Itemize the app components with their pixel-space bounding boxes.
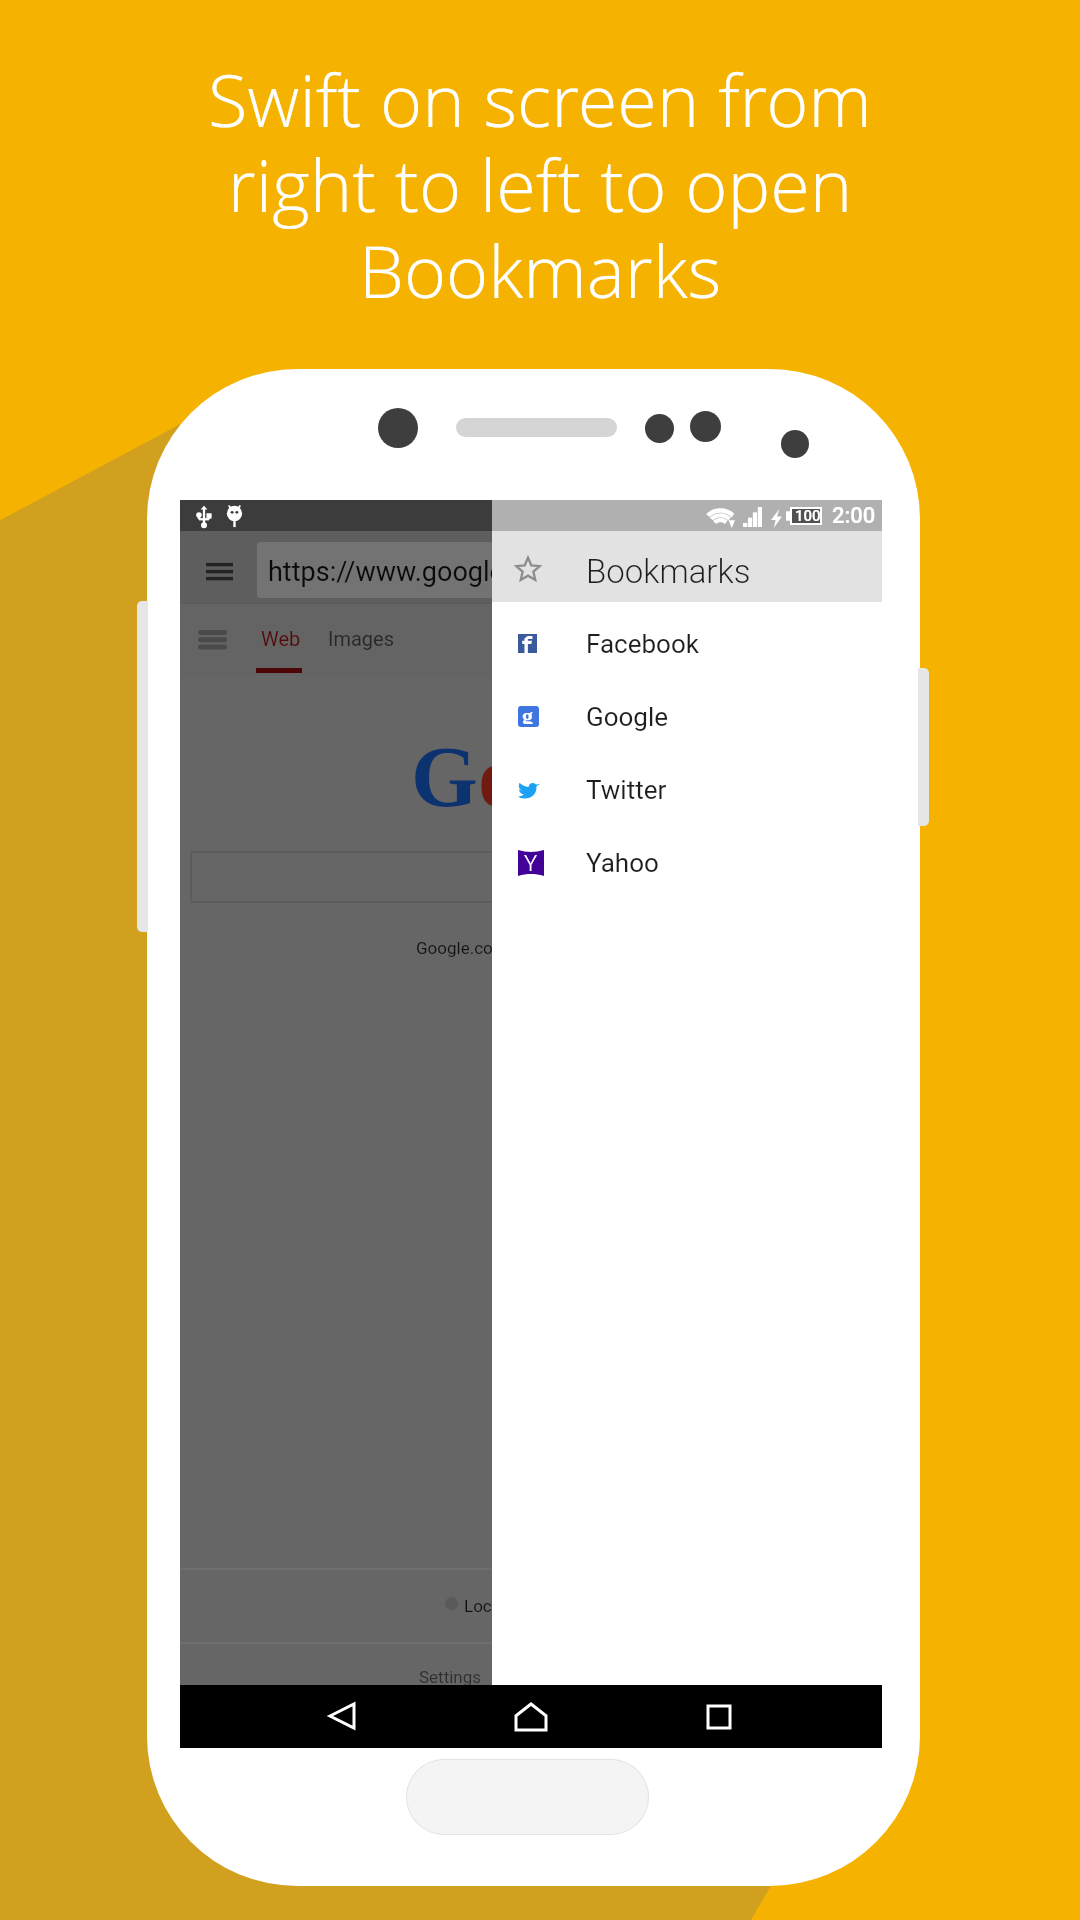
staticText: Settings <box>419 1667 482 1687</box>
staticText: Bookmarks <box>586 552 751 591</box>
button[interactable]: Recent apps <box>679 1685 759 1748</box>
staticText: Twitter <box>586 775 667 805</box>
staticText: g <box>564 729 607 824</box>
button[interactable]: Y <box>492 826 882 899</box>
button[interactable]: Home <box>491 1685 571 1748</box>
button[interactable]: Home <box>406 1759 649 1835</box>
staticText: 2:00 <box>832 503 876 529</box>
staticText: Location off <box>464 1596 556 1616</box>
staticText: Google.com <box>416 938 508 958</box>
staticText: l <box>607 729 631 824</box>
staticText: https://www.google.com <box>268 556 565 588</box>
staticText: o <box>478 729 521 824</box>
staticText: G <box>411 729 478 824</box>
staticText: Facebook <box>586 629 699 659</box>
staticText: Swift on screen from right to left to op… <box>0 50 1080 320</box>
staticText: Web <box>261 627 301 650</box>
button[interactable]: Back <box>302 1685 382 1748</box>
staticText: g <box>522 706 533 724</box>
staticText: o <box>521 729 564 824</box>
staticText: 100 <box>795 507 821 525</box>
button[interactable]: g <box>492 680 882 753</box>
button[interactable]: Bookmarks <box>492 531 882 602</box>
staticText: Yahoo <box>586 848 659 878</box>
button[interactable]: Twitter <box>492 753 882 826</box>
staticText: Google <box>586 702 669 732</box>
staticText: e <box>631 729 670 824</box>
staticText: Y <box>524 851 538 877</box>
staticText: Images <box>328 627 395 650</box>
button[interactable]: Facebook <box>492 607 882 680</box>
